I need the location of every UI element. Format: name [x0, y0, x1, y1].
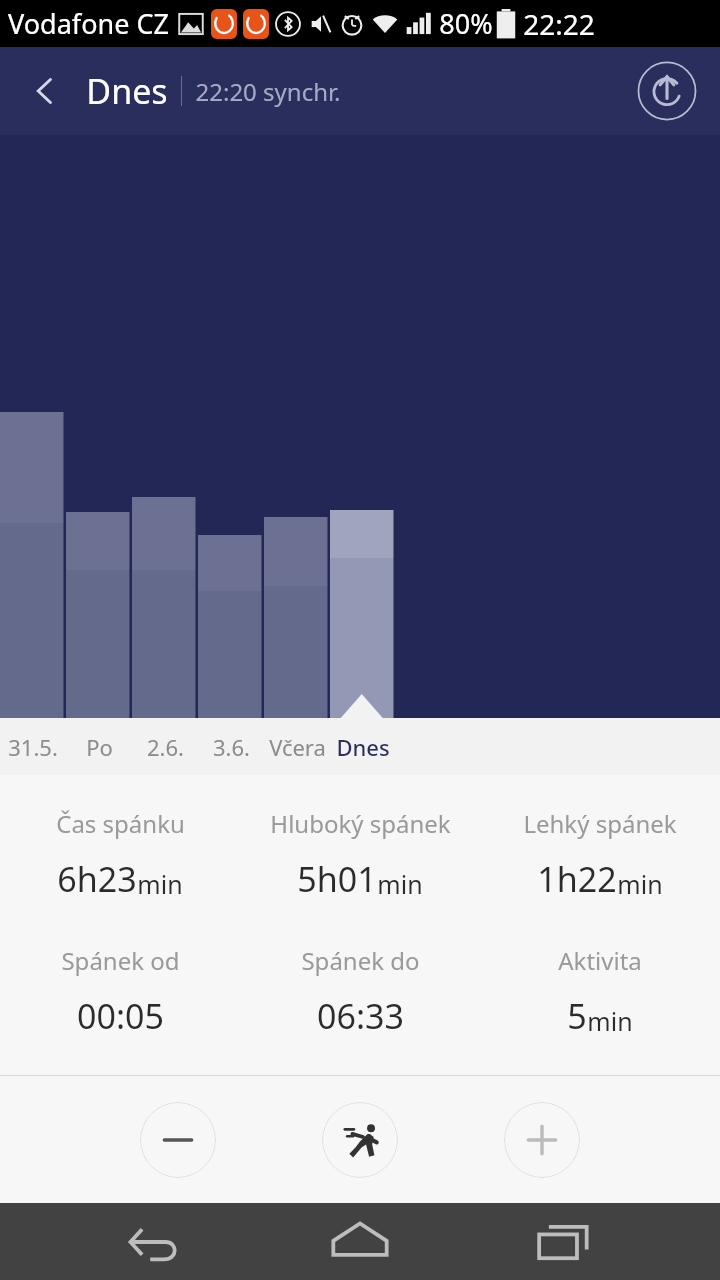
button[interactable]: Lehký spánek [480, 807, 720, 902]
button[interactable]: 31.5. [0, 718, 66, 775]
staticText: 1h22 [537, 856, 617, 902]
button[interactable]: Spánek od [0, 944, 240, 1039]
button[interactable]: Aktivita [480, 944, 720, 1039]
staticText: Vodafone CZ [8, 5, 169, 42]
button[interactable]: Dnes [330, 718, 396, 775]
staticText: Čas spánku [56, 807, 185, 840]
button[interactable]: Hluboký spánek [240, 807, 480, 902]
button[interactable]: Back [108, 1203, 204, 1280]
staticText: 6h23 [57, 856, 137, 902]
button[interactable]: 3.6. [198, 718, 264, 775]
button[interactable]: Po [66, 718, 132, 775]
staticText: 5h01 [297, 856, 377, 902]
staticText: Spánek od [61, 944, 180, 977]
staticText: Dnes [86, 68, 168, 114]
button[interactable]: Decrease [140, 1102, 216, 1178]
button[interactable]: Spánek do [240, 944, 480, 1039]
staticText: Lehký spánek [523, 807, 677, 840]
staticText: 5 [567, 993, 587, 1039]
staticText: min [377, 867, 423, 901]
staticText: 3.6. [213, 732, 250, 762]
staticText: Hluboký spánek [270, 807, 451, 840]
staticText: 06:33 [317, 993, 404, 1039]
button[interactable]: Včera [264, 718, 330, 775]
staticText: min [587, 1004, 633, 1038]
button[interactable]: Back [22, 68, 68, 114]
button[interactable]: Home [312, 1203, 408, 1280]
staticText: 22:22 [523, 5, 595, 43]
staticText: Po [86, 732, 113, 762]
staticText: 00:05 [77, 993, 164, 1039]
staticText: Dnes [336, 732, 390, 762]
staticText: min [137, 867, 183, 901]
button[interactable]: Recent apps [516, 1203, 612, 1280]
staticText: 2.6. [147, 732, 184, 762]
staticText: Spánek do [301, 944, 420, 977]
button[interactable]: Čas spánku [0, 807, 240, 902]
button[interactable]: Activity [322, 1102, 398, 1178]
staticText: 80% [439, 5, 493, 42]
staticText: 22:20 synchr. [195, 75, 341, 108]
staticText: Aktivita [558, 944, 642, 977]
button[interactable]: Synchronize [636, 60, 698, 122]
staticText: 31.5. [8, 732, 58, 762]
staticText: min [617, 867, 663, 901]
button[interactable]: 2.6. [132, 718, 198, 775]
staticText: Včera [269, 732, 326, 762]
button[interactable]: Increase [504, 1102, 580, 1178]
